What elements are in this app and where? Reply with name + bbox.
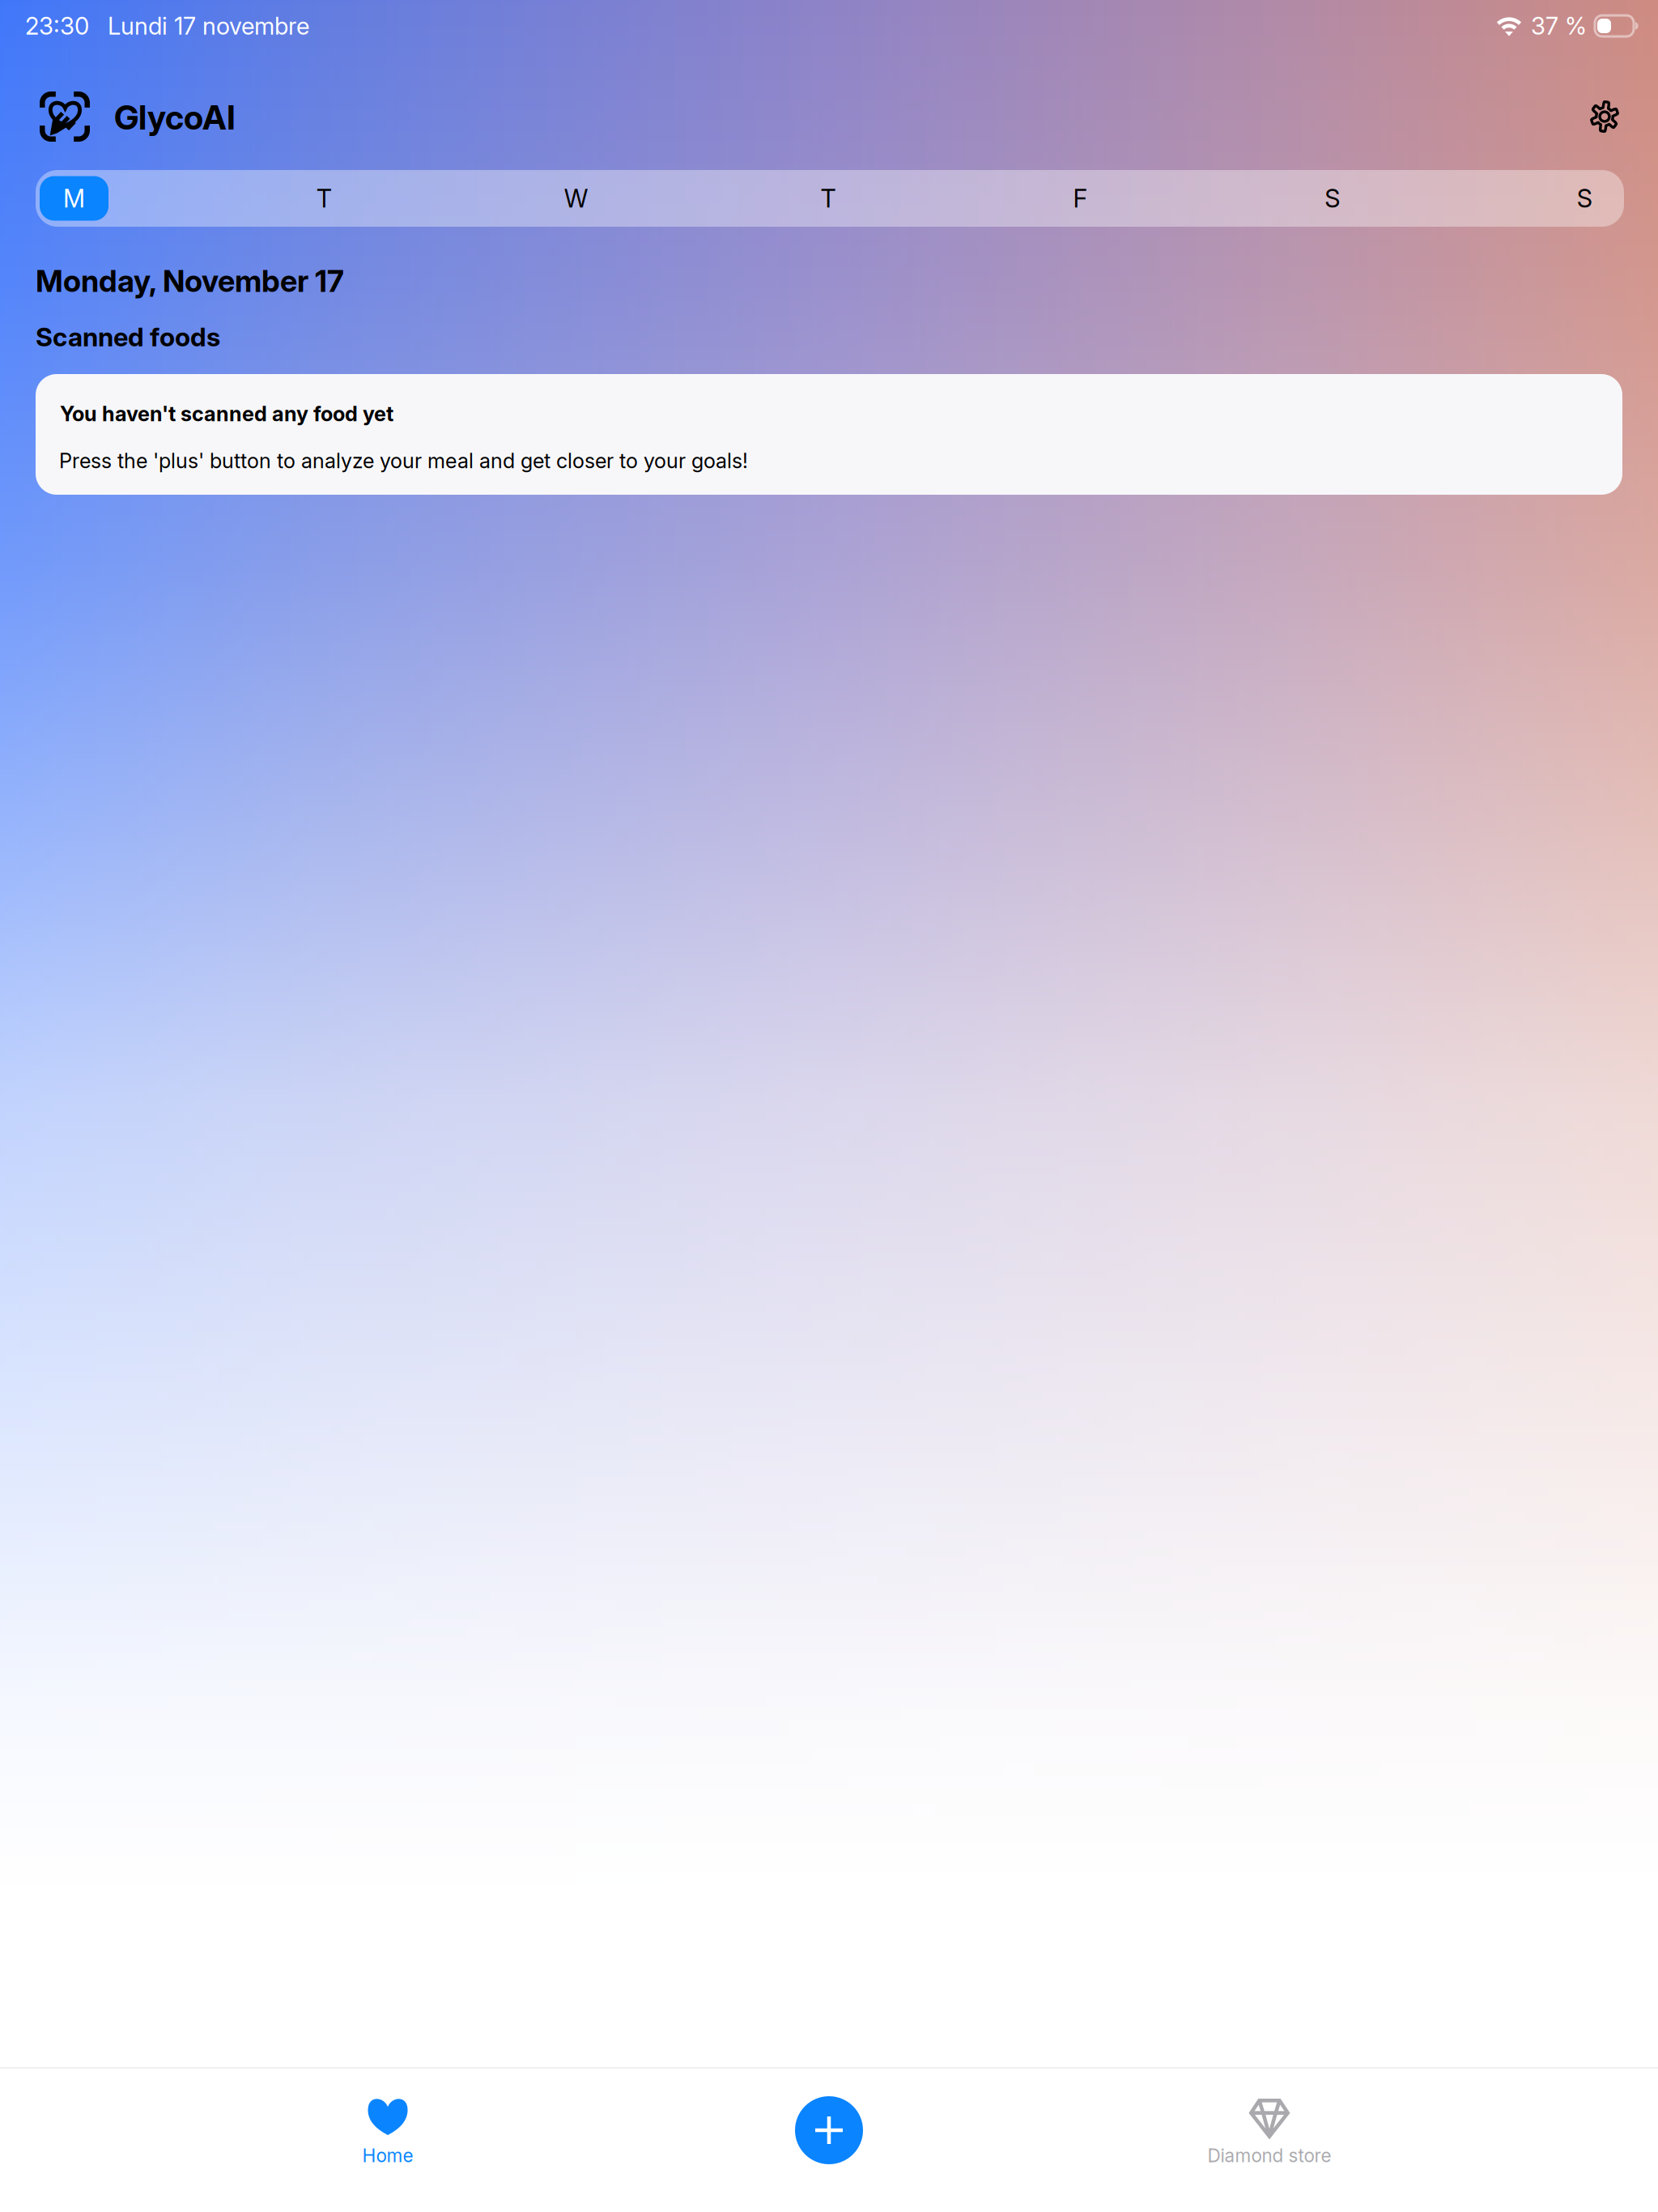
staticText: Lundi 17 novembre	[108, 12, 309, 40]
staticText: F	[1073, 183, 1088, 213]
button[interactable]: W	[515, 170, 637, 227]
button[interactable]: T	[263, 170, 385, 227]
staticText: 23:30	[25, 12, 89, 40]
staticText: S	[1325, 183, 1340, 213]
button[interactable]: Diamond store	[1148, 2099, 1391, 2167]
staticText: Scanned foods	[36, 321, 220, 352]
staticText: You haven't scanned any food yet	[60, 401, 393, 426]
button[interactable]: M	[13, 170, 135, 227]
staticText: M	[63, 183, 85, 213]
staticText: GlycoAI	[114, 97, 236, 138]
button[interactable]: F	[1020, 170, 1141, 227]
staticText: Press the 'plus' button to analyze your …	[59, 448, 748, 473]
staticText: Monday, November 17	[36, 263, 344, 299]
staticText: T	[316, 183, 332, 213]
button[interactable]: Settings	[1575, 87, 1635, 147]
button[interactable]: S	[1272, 170, 1393, 227]
button[interactable]: Scan a meal	[780, 2082, 878, 2179]
button[interactable]: S	[1524, 170, 1645, 227]
staticText: 37 %	[1531, 12, 1587, 40]
staticText: S	[1577, 183, 1592, 213]
staticText: W	[564, 183, 588, 213]
staticText: Diamond store	[1207, 2144, 1331, 2167]
button[interactable]: T	[768, 170, 889, 227]
staticText: Home	[362, 2144, 413, 2167]
button[interactable]: Home	[266, 2099, 509, 2167]
staticText: T	[821, 183, 836, 213]
